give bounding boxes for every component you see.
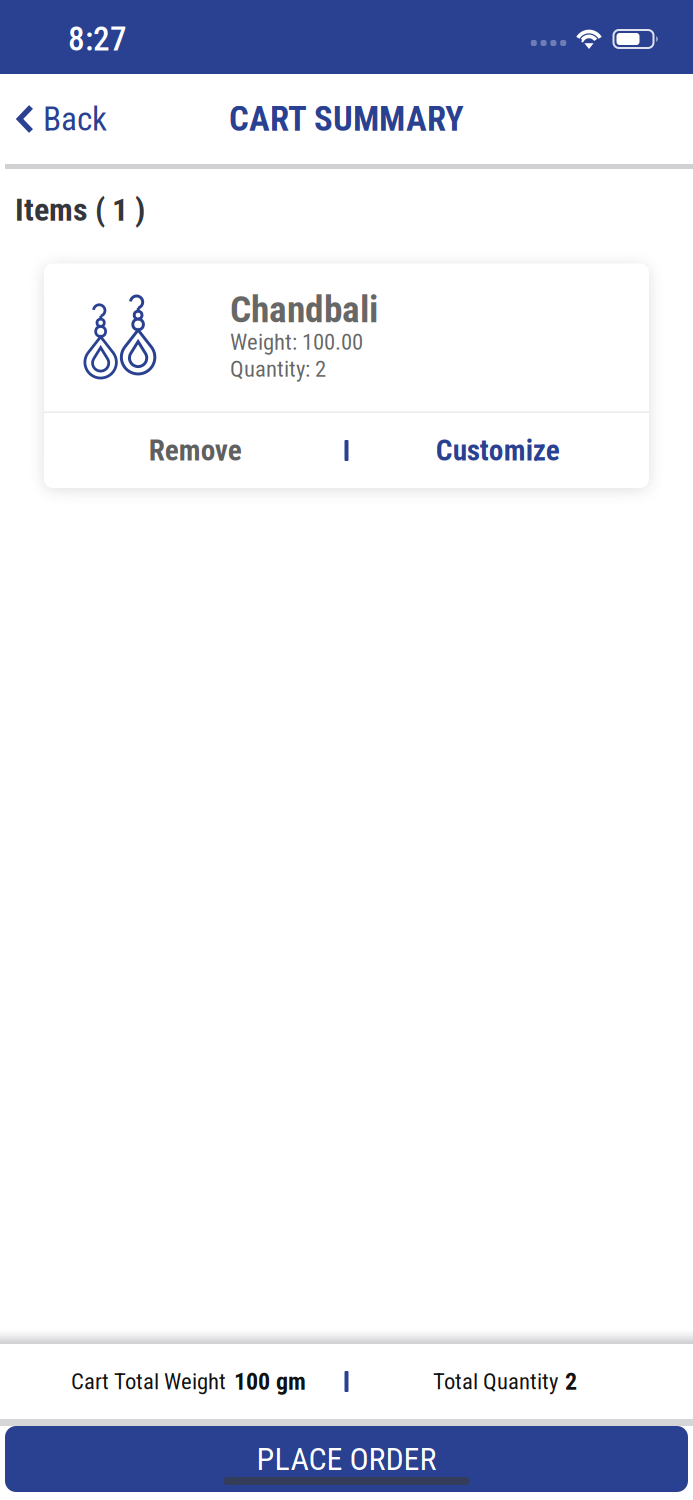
staticText: CART SUMMARY: [229, 99, 464, 139]
button[interactable]: Remove: [44, 413, 346, 488]
button[interactable]: Customize: [346, 413, 649, 488]
button[interactable]: Back: [0, 74, 123, 164]
staticText: 2: [565, 1367, 577, 1395]
staticText: Chandbali: [230, 288, 378, 331]
staticText: Items ( 1 ): [15, 191, 145, 228]
button[interactable]: PLACE ORDER: [5, 1426, 688, 1492]
staticText: PLACE ORDER: [256, 1440, 436, 1478]
staticText: 100 gm: [234, 1367, 306, 1395]
staticText: Customize: [436, 433, 560, 468]
staticText: Quantity: 2: [230, 356, 326, 382]
staticText: Remove: [149, 433, 242, 468]
staticText: Cart Total Weight: [71, 1368, 226, 1395]
staticText: 8:27: [68, 19, 127, 59]
staticText: Total Quantity: [433, 1368, 558, 1395]
staticText: Weight: 100.00: [230, 329, 363, 355]
staticText: Back: [43, 99, 107, 139]
